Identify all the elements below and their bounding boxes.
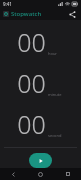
staticText: 00 bbox=[17, 66, 46, 100]
staticText: 00 bbox=[17, 25, 46, 59]
button[interactable]: Start bbox=[29, 153, 52, 168]
staticText: hour bbox=[48, 51, 58, 56]
button[interactable]: Back bbox=[0, 168, 27, 180]
staticText: 00 bbox=[17, 107, 46, 141]
button[interactable]: Recent apps bbox=[54, 168, 81, 180]
staticText: 9:41 bbox=[3, 1, 12, 7]
button[interactable]: Share bbox=[67, 9, 78, 20]
staticText: minute bbox=[48, 92, 62, 97]
staticText: second bbox=[48, 133, 62, 138]
staticText: Stopwatch bbox=[11, 10, 42, 18]
button[interactable]: Home bbox=[27, 168, 54, 180]
